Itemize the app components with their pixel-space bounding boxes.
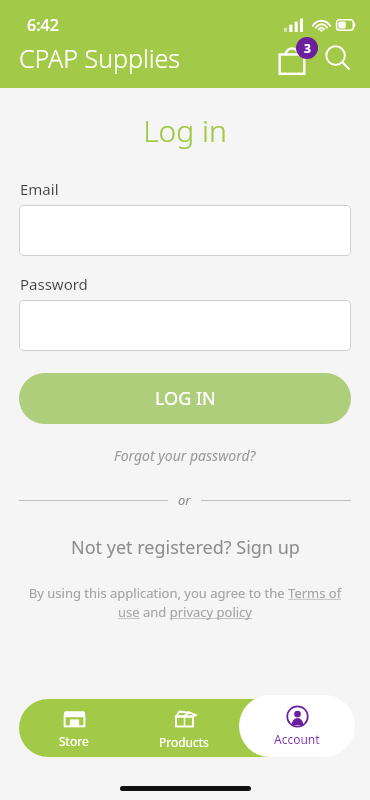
- button[interactable]: [19, 205, 351, 256]
- staticText: Email: [20, 179, 59, 199]
- staticText: Forgot your password?: [114, 446, 256, 465]
- button[interactable]: Forgot your password?: [0, 446, 370, 465]
- staticText: 3: [304, 40, 311, 56]
- staticText: LOG IN: [155, 386, 216, 411]
- staticText: Password: [20, 274, 88, 294]
- staticText: Products: [159, 734, 209, 750]
- button[interactable]: Account: [239, 695, 355, 757]
- button[interactable]: LOG IN: [19, 373, 351, 424]
- staticText: Not yet registered? Sign up: [71, 535, 300, 560]
- button[interactable]: By using this application, you agree to …: [20, 584, 350, 621]
- button[interactable]: Products: [129, 699, 239, 757]
- staticText: 6:42: [27, 14, 59, 36]
- staticText: Account: [274, 731, 320, 747]
- staticText: Log in: [0, 110, 370, 151]
- staticText: CPAP Supplies: [19, 41, 181, 75]
- staticText: or: [178, 491, 191, 509]
- button[interactable]: Cart, 3 items: [270, 36, 314, 80]
- staticText: Store: [59, 733, 89, 749]
- button[interactable]: Store: [19, 699, 129, 757]
- button[interactable]: Not yet registered? Sign up: [0, 535, 370, 560]
- button[interactable]: Search: [318, 38, 358, 78]
- button[interactable]: [19, 300, 351, 351]
